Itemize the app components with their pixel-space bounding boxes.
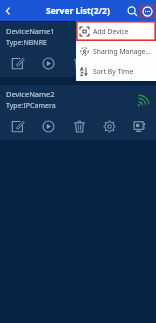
staticText: Add Device [93,27,129,36]
staticText: Type:IPCamera [6,101,56,111]
button[interactable]: Settings [94,116,124,136]
staticText: DeviceName2 [6,89,55,99]
button[interactable]: Settings [94,53,124,73]
staticText: Type:NBNRE [6,38,47,48]
button[interactable]: Play [33,53,64,73]
button[interactable]: More options [140,4,155,19]
button[interactable]: Play [33,116,64,136]
staticText: Sharing Manage... [93,47,151,56]
button[interactable]: Delete [64,53,94,73]
button[interactable]: Sharing Manage... [76,41,156,61]
button[interactable]: Delete [64,116,94,136]
staticText: Sort By Time [93,67,134,76]
button[interactable]: Back [0,3,16,19]
button[interactable]: Playback [124,116,154,136]
button[interactable]: Edit [2,116,33,136]
button[interactable]: Sort By Time [76,61,156,81]
staticText: Server List(2/2) [46,5,110,17]
button[interactable]: Search [124,3,140,19]
button[interactable]: Add Device [76,21,156,41]
staticText: DeviceName1 [6,26,55,36]
button[interactable]: Playback [124,53,154,73]
button[interactable]: Edit [2,53,33,73]
